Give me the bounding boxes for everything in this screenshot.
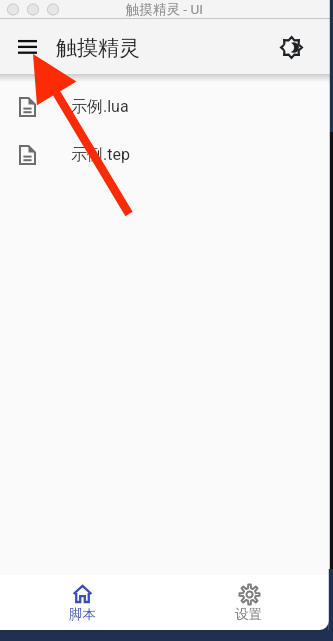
button[interactable]: Toggle night mode <box>270 26 312 68</box>
staticText: 触摸精灵 - UI <box>126 1 203 18</box>
button[interactable]: 脚本 <box>0 575 166 630</box>
button[interactable]: 示例.tep <box>0 131 333 179</box>
button[interactable]: Open navigation drawer <box>0 19 55 74</box>
staticText: 示例.tep <box>71 145 130 165</box>
staticText: 设置 <box>235 606 262 623</box>
staticText: 触摸精灵 <box>56 35 140 61</box>
staticText: 示例.lua <box>71 97 129 117</box>
button[interactable]: 设置 <box>166 575 333 630</box>
button[interactable]: 示例.lua <box>0 83 333 131</box>
staticText: 脚本 <box>69 606 96 623</box>
